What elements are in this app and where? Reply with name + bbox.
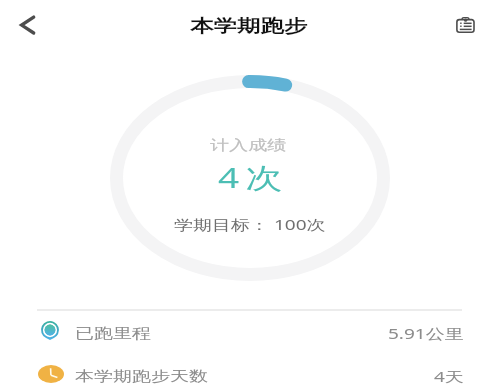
- button[interactable]: Records: [448, 7, 484, 43]
- button[interactable]: 本学期跑步天数: [0, 354, 500, 392]
- staticText: 5.91公里: [388, 324, 464, 343]
- button[interactable]: Back: [7, 5, 47, 45]
- staticText: 4天: [434, 367, 464, 386]
- staticText: 本学期跑步天数: [75, 367, 208, 385]
- staticText: 已跑里程: [75, 324, 151, 342]
- staticText: 本学期跑步: [190, 15, 308, 37]
- staticText: 计入成绩: [210, 136, 287, 154]
- button[interactable]: 已跑里程: [0, 310, 500, 354]
- staticText: 4次: [218, 158, 289, 196]
- staticText: 学期目标： 100次: [174, 215, 326, 234]
